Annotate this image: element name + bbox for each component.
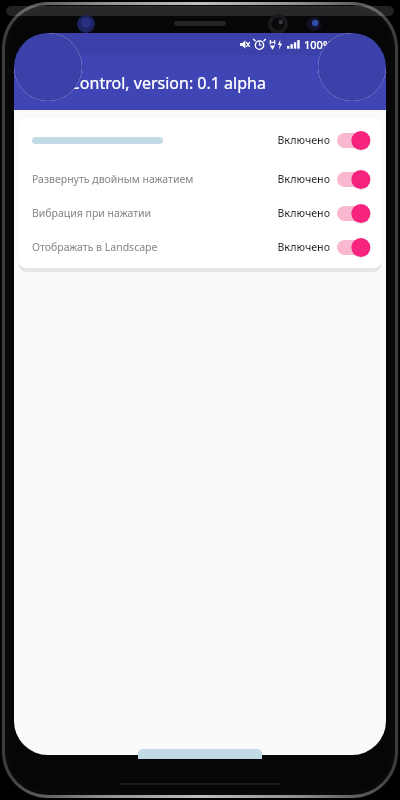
staticText: Развернуть двойным нажатием <box>32 172 194 186</box>
button[interactable]: Развернуть двойным нажатием <box>19 166 381 192</box>
button[interactable]: Toggle setting <box>337 204 370 223</box>
staticText: 100% <box>304 37 333 52</box>
staticText: Вибрация при нажатии <box>32 206 152 220</box>
staticText: 0:21 <box>354 37 376 52</box>
button[interactable]: Toggle setting <box>337 238 370 257</box>
staticText: Edge Control, version: 0.1 alpha <box>28 72 266 94</box>
button[interactable]: Вибрация при нажатии <box>19 200 381 226</box>
staticText: Включено <box>277 172 330 186</box>
staticText: Включено <box>277 240 330 254</box>
button[interactable]: Edge Control, version: 0.1 alpha <box>14 55 386 110</box>
button[interactable]: Включено <box>19 127 381 153</box>
staticText: Включено <box>277 206 330 220</box>
staticText: Включено <box>277 133 330 147</box>
button[interactable]: Toggle setting <box>337 131 370 150</box>
button[interactable]: Toggle setting <box>337 170 370 189</box>
staticText: Отображать в Landscape <box>32 240 158 254</box>
button[interactable]: Отображать в Landscape <box>19 234 381 260</box>
